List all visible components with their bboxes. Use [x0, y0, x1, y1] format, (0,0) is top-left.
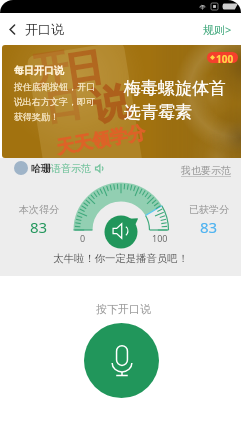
staticText: 天天领学分	[55, 121, 147, 158]
other: 返回	[5, 22, 20, 37]
staticText: 获得奖励！	[14, 111, 59, 122]
staticText: 口	[43, 79, 85, 130]
other: 播放语音示范	[95, 164, 104, 173]
staticText: 100	[216, 52, 234, 63]
staticText: 语音示范	[51, 162, 91, 175]
button[interactable]: 规则>	[203, 13, 232, 45]
staticText: 0	[80, 232, 86, 244]
staticText: 已获学分	[189, 203, 229, 216]
button[interactable]: 播放示范音频	[102, 211, 140, 249]
staticText: 开口说	[25, 21, 64, 37]
staticText: 100	[152, 232, 168, 244]
staticText: 太牛啦！你一定是播音员吧！	[53, 252, 189, 265]
staticText: 说出右方文字，即可	[14, 96, 95, 107]
staticText: 本次得分	[19, 203, 59, 216]
staticText: 83	[200, 217, 218, 237]
staticText: 选青霉素	[124, 102, 192, 123]
button[interactable]: 开	[2, 45, 241, 158]
button[interactable]: 按下开口说录音	[84, 323, 159, 398]
staticText: 每日开口说	[14, 64, 64, 77]
button[interactable]: 哈珊	[14, 161, 104, 175]
staticText: 83	[30, 217, 48, 237]
staticText: 按下开口说	[96, 302, 151, 316]
button[interactable]: 我也要示范	[181, 164, 231, 177]
staticText: 梅毒螺旋体首	[124, 78, 226, 99]
staticText: 哈珊	[31, 162, 51, 175]
staticText: 开	[29, 45, 71, 93]
staticText: 日	[61, 45, 106, 96]
staticText: 按住底部按钮，开口	[14, 81, 95, 92]
button[interactable]: 返回	[5, 13, 64, 45]
staticText: 说	[87, 77, 132, 131]
staticText: 规则>	[203, 22, 232, 37]
